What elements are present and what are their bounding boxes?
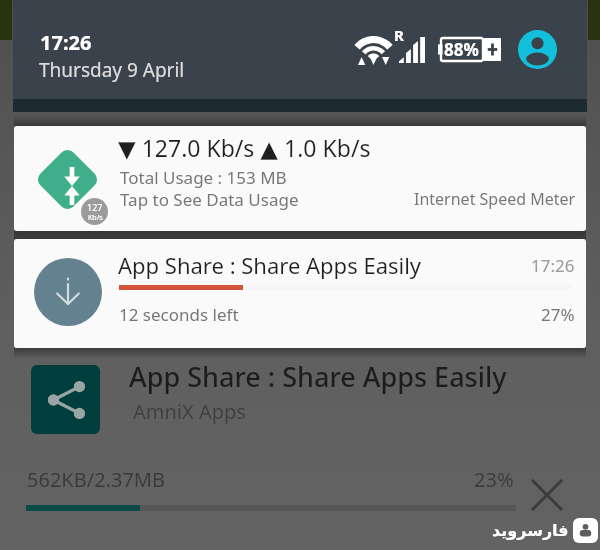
button[interactable]: User profile bbox=[518, 30, 557, 69]
staticText: 12 seconds left bbox=[119, 303, 239, 326]
button[interactable]: 127 bbox=[14, 126, 586, 231]
staticText: 17:26 bbox=[40, 29, 92, 56]
staticText: App Share : Share Apps Easily bbox=[118, 250, 422, 280]
staticText: Total Usage : 153 MB bbox=[120, 166, 287, 189]
staticText: 23% bbox=[474, 466, 514, 493]
staticText: 17:26 bbox=[531, 254, 575, 277]
staticText: Thursday 9 April bbox=[39, 57, 185, 83]
staticText: Kb/s bbox=[88, 213, 103, 223]
staticText: AmniX Apps bbox=[133, 398, 246, 425]
staticText: R bbox=[394, 25, 404, 45]
button[interactable]: App Share : Share Apps Easily bbox=[14, 239, 586, 348]
staticText: 127 bbox=[87, 201, 103, 213]
staticText: Internet Speed Meter bbox=[414, 188, 576, 210]
staticText: App Share : Share Apps Easily bbox=[129, 358, 507, 395]
button[interactable]: Cancel download bbox=[522, 470, 572, 520]
staticText: 88% bbox=[444, 38, 479, 61]
staticText: فارسروید bbox=[492, 521, 569, 540]
staticText: ▼ 127.0 Kb/s ▲ 1.0 Kb/s bbox=[118, 132, 371, 163]
staticText: 562KB/2.37MB bbox=[27, 466, 165, 493]
staticText: Tap to See Data Usage bbox=[120, 188, 299, 211]
staticText: 27% bbox=[541, 303, 575, 326]
